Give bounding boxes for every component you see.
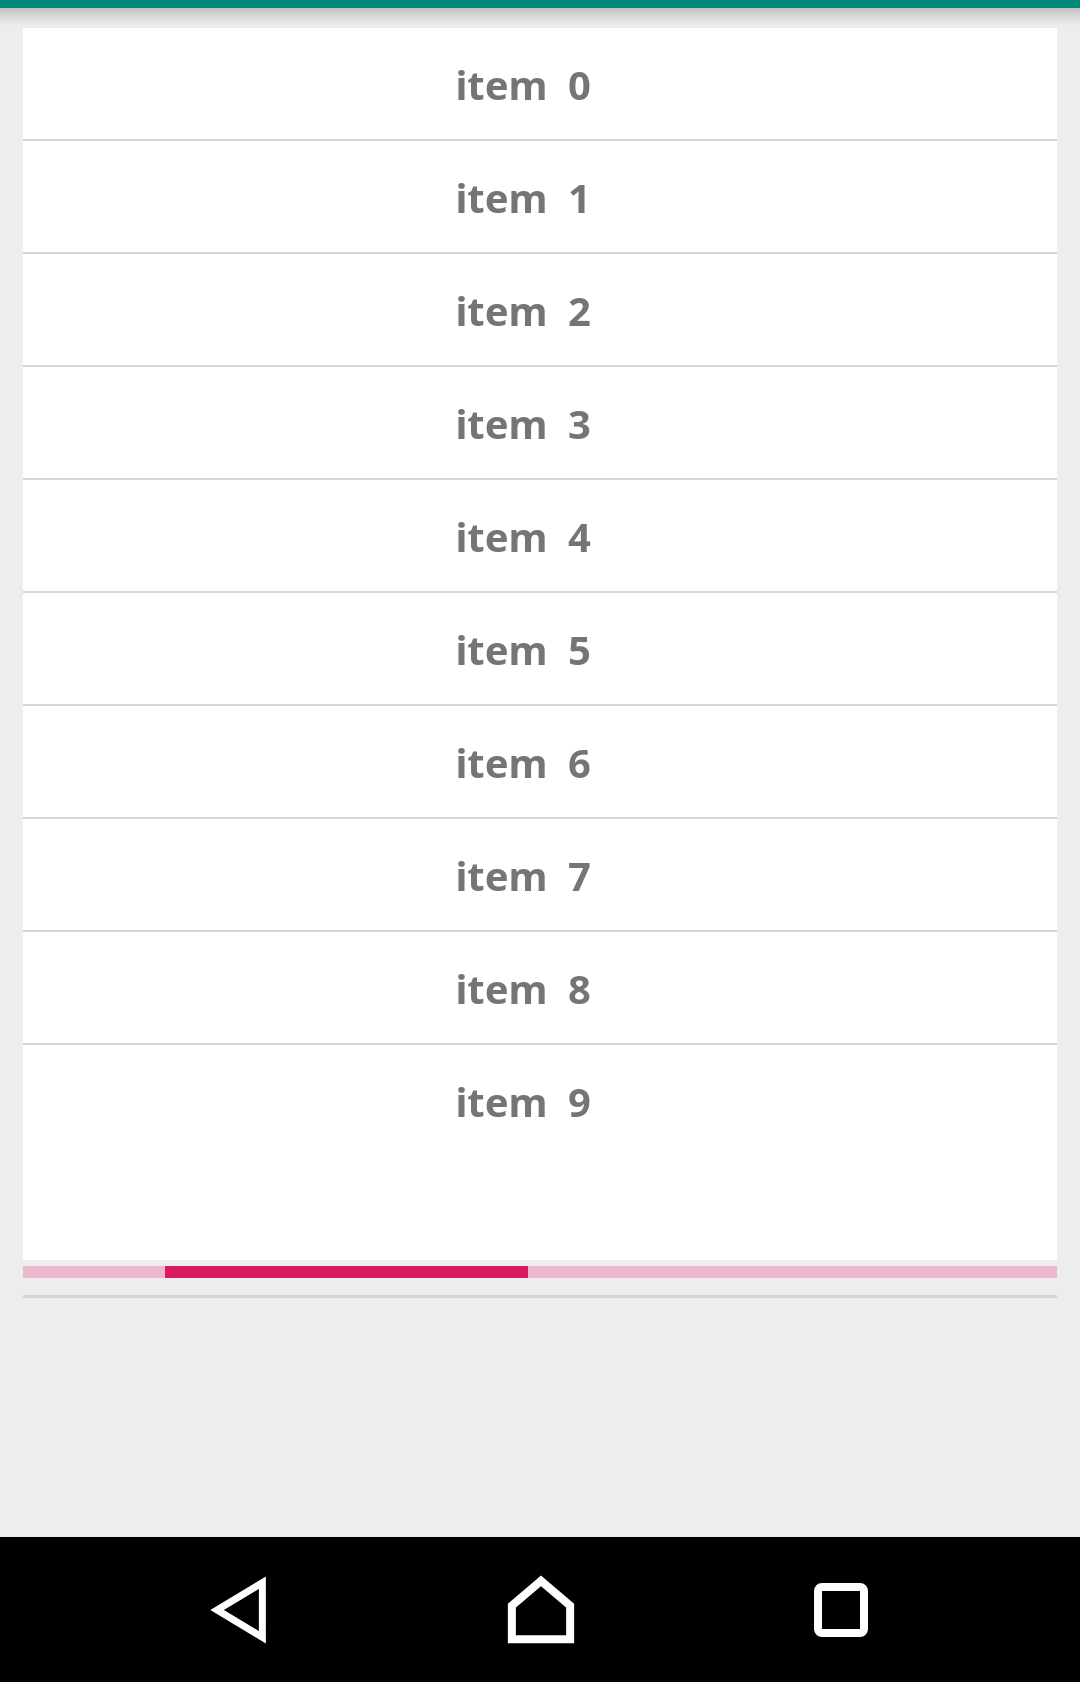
button[interactable]: item <box>23 593 1057 704</box>
staticText: item <box>455 1074 548 1128</box>
staticText: item <box>455 622 548 676</box>
staticText: 5 <box>568 622 591 676</box>
button[interactable]: item <box>23 1045 1057 1156</box>
staticText: item <box>455 396 548 450</box>
staticText: 8 <box>568 961 591 1015</box>
button[interactable]: Recent apps <box>781 1537 901 1682</box>
staticText: item <box>455 961 548 1015</box>
button[interactable]: item <box>23 480 1057 591</box>
button[interactable] <box>23 1266 1057 1278</box>
staticText: 2 <box>568 283 591 337</box>
staticText: 9 <box>568 1074 591 1128</box>
button[interactable]: item <box>23 819 1057 930</box>
button[interactable]: Back <box>185 1537 305 1682</box>
staticText: 6 <box>568 735 591 789</box>
staticText: 1 <box>568 170 591 224</box>
staticText: 4 <box>568 509 591 563</box>
button[interactable]: Home <box>481 1537 601 1682</box>
button[interactable]: item <box>23 706 1057 817</box>
button[interactable]: item <box>23 141 1057 252</box>
button[interactable]: item <box>23 28 1057 139</box>
staticText: item <box>455 170 548 224</box>
button[interactable]: item <box>23 367 1057 478</box>
button[interactable]: item <box>23 254 1057 365</box>
staticText: 3 <box>568 396 591 450</box>
staticText: item <box>455 283 548 337</box>
staticText: item <box>455 735 548 789</box>
staticText: item <box>455 509 548 563</box>
staticText: 0 <box>568 57 591 111</box>
staticText: item <box>455 848 548 902</box>
staticText: 7 <box>568 848 591 902</box>
staticText: item <box>455 57 548 111</box>
button[interactable]: item <box>23 932 1057 1043</box>
